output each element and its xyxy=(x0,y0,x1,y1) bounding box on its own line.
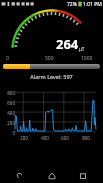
button[interactable]: Recents xyxy=(71,168,95,183)
staticText: Alarm Level: 597 xyxy=(0,73,103,80)
staticText: 264 xyxy=(56,35,79,53)
staticText: 0 xyxy=(1,130,15,136)
staticText: 0 xyxy=(6,55,9,62)
staticText: 800 xyxy=(1,90,15,96)
staticText: 1000 xyxy=(81,55,93,62)
staticText: 400 xyxy=(38,135,52,141)
staticText: 72% xyxy=(67,1,77,8)
button[interactable] xyxy=(3,64,100,69)
button[interactable]: Home xyxy=(40,168,64,183)
staticText: 1:01 PM xyxy=(83,1,102,8)
staticText: 400 xyxy=(1,110,15,116)
staticText: 200 xyxy=(17,135,31,141)
staticText: µT xyxy=(79,46,85,52)
staticText: 800 xyxy=(79,135,93,141)
button[interactable]: Back xyxy=(8,168,32,183)
staticText: 500 xyxy=(45,55,54,62)
staticText: 600 xyxy=(58,135,72,141)
staticText: 600 xyxy=(1,100,15,106)
staticText: 200 xyxy=(1,120,15,126)
